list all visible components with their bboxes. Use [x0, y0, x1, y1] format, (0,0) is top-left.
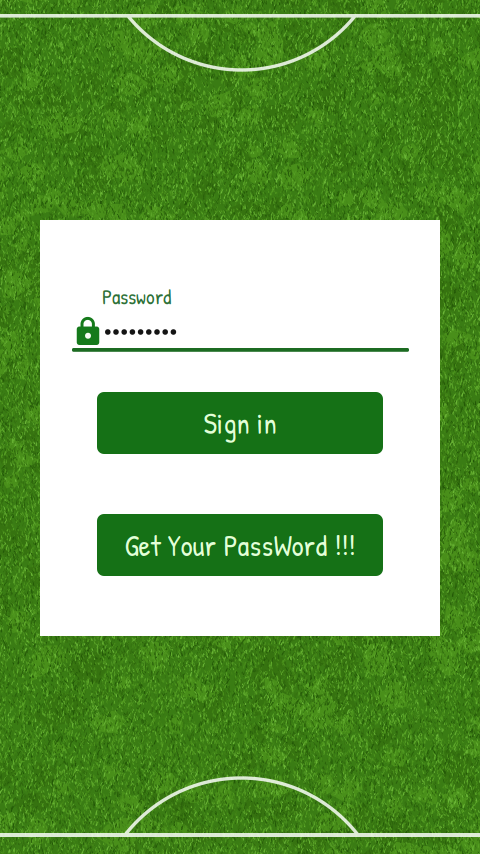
staticText: Get Your PassWord !!! — [124, 525, 355, 565]
button[interactable]: Get Your PassWord !!! — [97, 514, 383, 576]
staticText: Password — [102, 282, 171, 311]
button[interactable]: Password — [72, 278, 409, 352]
button[interactable]: Sign in — [97, 392, 383, 454]
staticText: Sign in — [203, 403, 276, 443]
